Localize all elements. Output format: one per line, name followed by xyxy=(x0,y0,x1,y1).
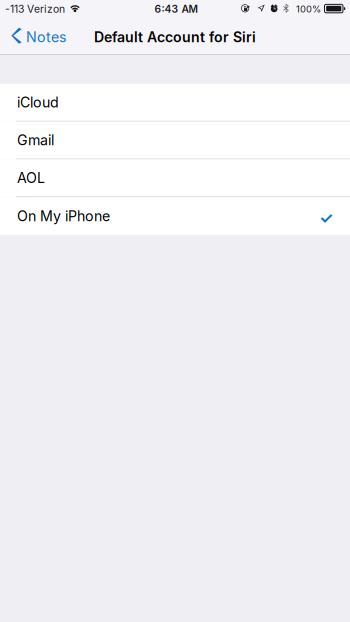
staticText: Gmail xyxy=(17,131,54,149)
button[interactable]: On My iPhone xyxy=(0,197,350,235)
staticText: On My iPhone xyxy=(17,207,110,225)
staticText: Notes xyxy=(26,28,66,46)
staticText: Default Account for Siri xyxy=(94,28,256,46)
staticText: AOL xyxy=(17,169,45,186)
staticText: iCloud xyxy=(17,94,59,111)
staticText: -113 Verizon xyxy=(5,3,65,15)
button[interactable]: iCloud xyxy=(0,84,350,122)
button[interactable]: Notes xyxy=(0,20,76,54)
staticText: 100% xyxy=(296,3,321,15)
button[interactable]: AOL xyxy=(0,159,350,197)
button[interactable]: Gmail xyxy=(0,122,350,159)
staticText: 6:43 AM xyxy=(154,3,198,15)
